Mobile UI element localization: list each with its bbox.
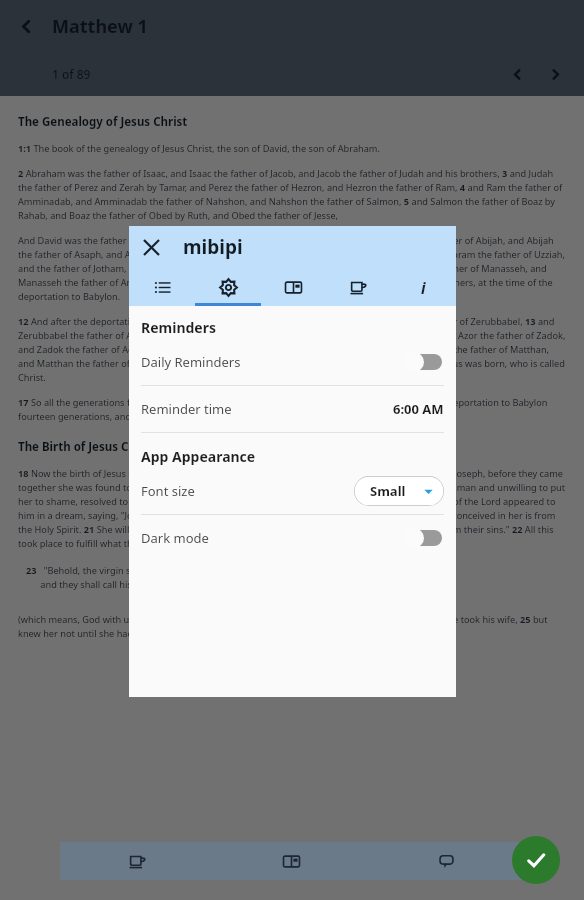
staticText: (which means, God with us). 24 When Jose… [18,613,566,640]
staticText: 6:00 AM [393,400,444,418]
button[interactable]: Font size [129,468,456,514]
staticText: 2 Abraham was the father of Isaac, and I… [18,167,566,222]
button[interactable]: Reader [214,842,369,880]
staticText: 12 And after the deportation to Babylon:… [18,315,566,384]
staticText: 18 Now the birth of Jesus Christ took pl… [18,467,566,550]
staticText: App Appearance [141,447,256,466]
button[interactable]: Settings [195,268,261,306]
button[interactable]: About [391,268,456,306]
button[interactable]: Daily Reminders [129,339,456,385]
button[interactable]: Notes [369,842,524,880]
staticText: 23 "Behold, the virgin shall conceive an… [26,564,255,591]
button[interactable]: Devotional [326,268,391,306]
button[interactable]: Back [6,6,46,46]
button[interactable]: Reader [261,268,326,306]
button[interactable]: Reminder time [129,386,456,432]
staticText: The Birth of Jesus Christ [18,439,156,455]
staticText: mibipi [183,234,243,260]
button[interactable]: Next chapter [536,55,574,93]
staticText: The Genealogy of Jesus Christ [18,114,188,130]
staticText: 17 So all the generations from Abraham t… [18,396,566,423]
button[interactable]: Close [133,229,169,265]
staticText: Font size [141,482,195,500]
button[interactable]: Previous chapter [498,55,536,93]
button[interactable]: Confirm [512,836,560,884]
staticText: Matthew 1 [52,14,148,39]
staticText: i [421,278,426,297]
button[interactable]: Chapters [129,268,195,306]
staticText: Small [370,482,406,500]
button[interactable]: Small [354,476,444,506]
button[interactable]: Devotional [60,842,214,880]
button[interactable] [404,351,444,373]
staticText: 1 of 89 [52,66,91,82]
staticText: Daily Reminders [141,353,241,371]
staticText: Reminder time [141,400,232,418]
staticText: Dark mode [141,529,209,547]
staticText: And David was the father of Solomon, and… [18,234,566,303]
button[interactable]: Dark mode [129,515,456,561]
button[interactable] [404,527,444,549]
staticText: Reminders [141,318,216,337]
staticText: 1:1 The book of the genealogy of Jesus C… [18,142,380,155]
